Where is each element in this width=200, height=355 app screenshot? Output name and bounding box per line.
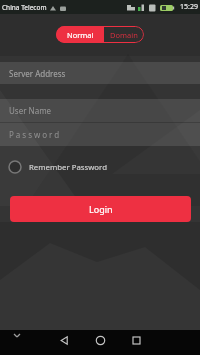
staticText: Login — [89, 203, 113, 215]
staticText: China Telecom — [2, 3, 47, 12]
button[interactable]: User Name — [0, 99, 200, 122]
staticText: Password — [9, 129, 62, 140]
button[interactable]: Remember Password — [8, 160, 107, 174]
button[interactable] — [59, 335, 70, 346]
staticText: 15:29 — [180, 2, 198, 12]
staticText: Normal — [67, 30, 94, 40]
button[interactable] — [11, 330, 23, 342]
button[interactable] — [95, 335, 106, 346]
button[interactable] — [131, 335, 142, 346]
staticText: Remember Password — [29, 162, 107, 173]
button[interactable]: Normal — [56, 26, 104, 43]
staticText: Server Address — [9, 68, 66, 79]
button[interactable]: Server Address — [0, 62, 200, 84]
staticText: Domain — [110, 30, 138, 40]
button[interactable]: Domain — [104, 26, 144, 43]
button[interactable]: Password — [0, 123, 200, 146]
staticText: User Name — [9, 105, 52, 116]
button[interactable]: Login — [10, 196, 191, 222]
